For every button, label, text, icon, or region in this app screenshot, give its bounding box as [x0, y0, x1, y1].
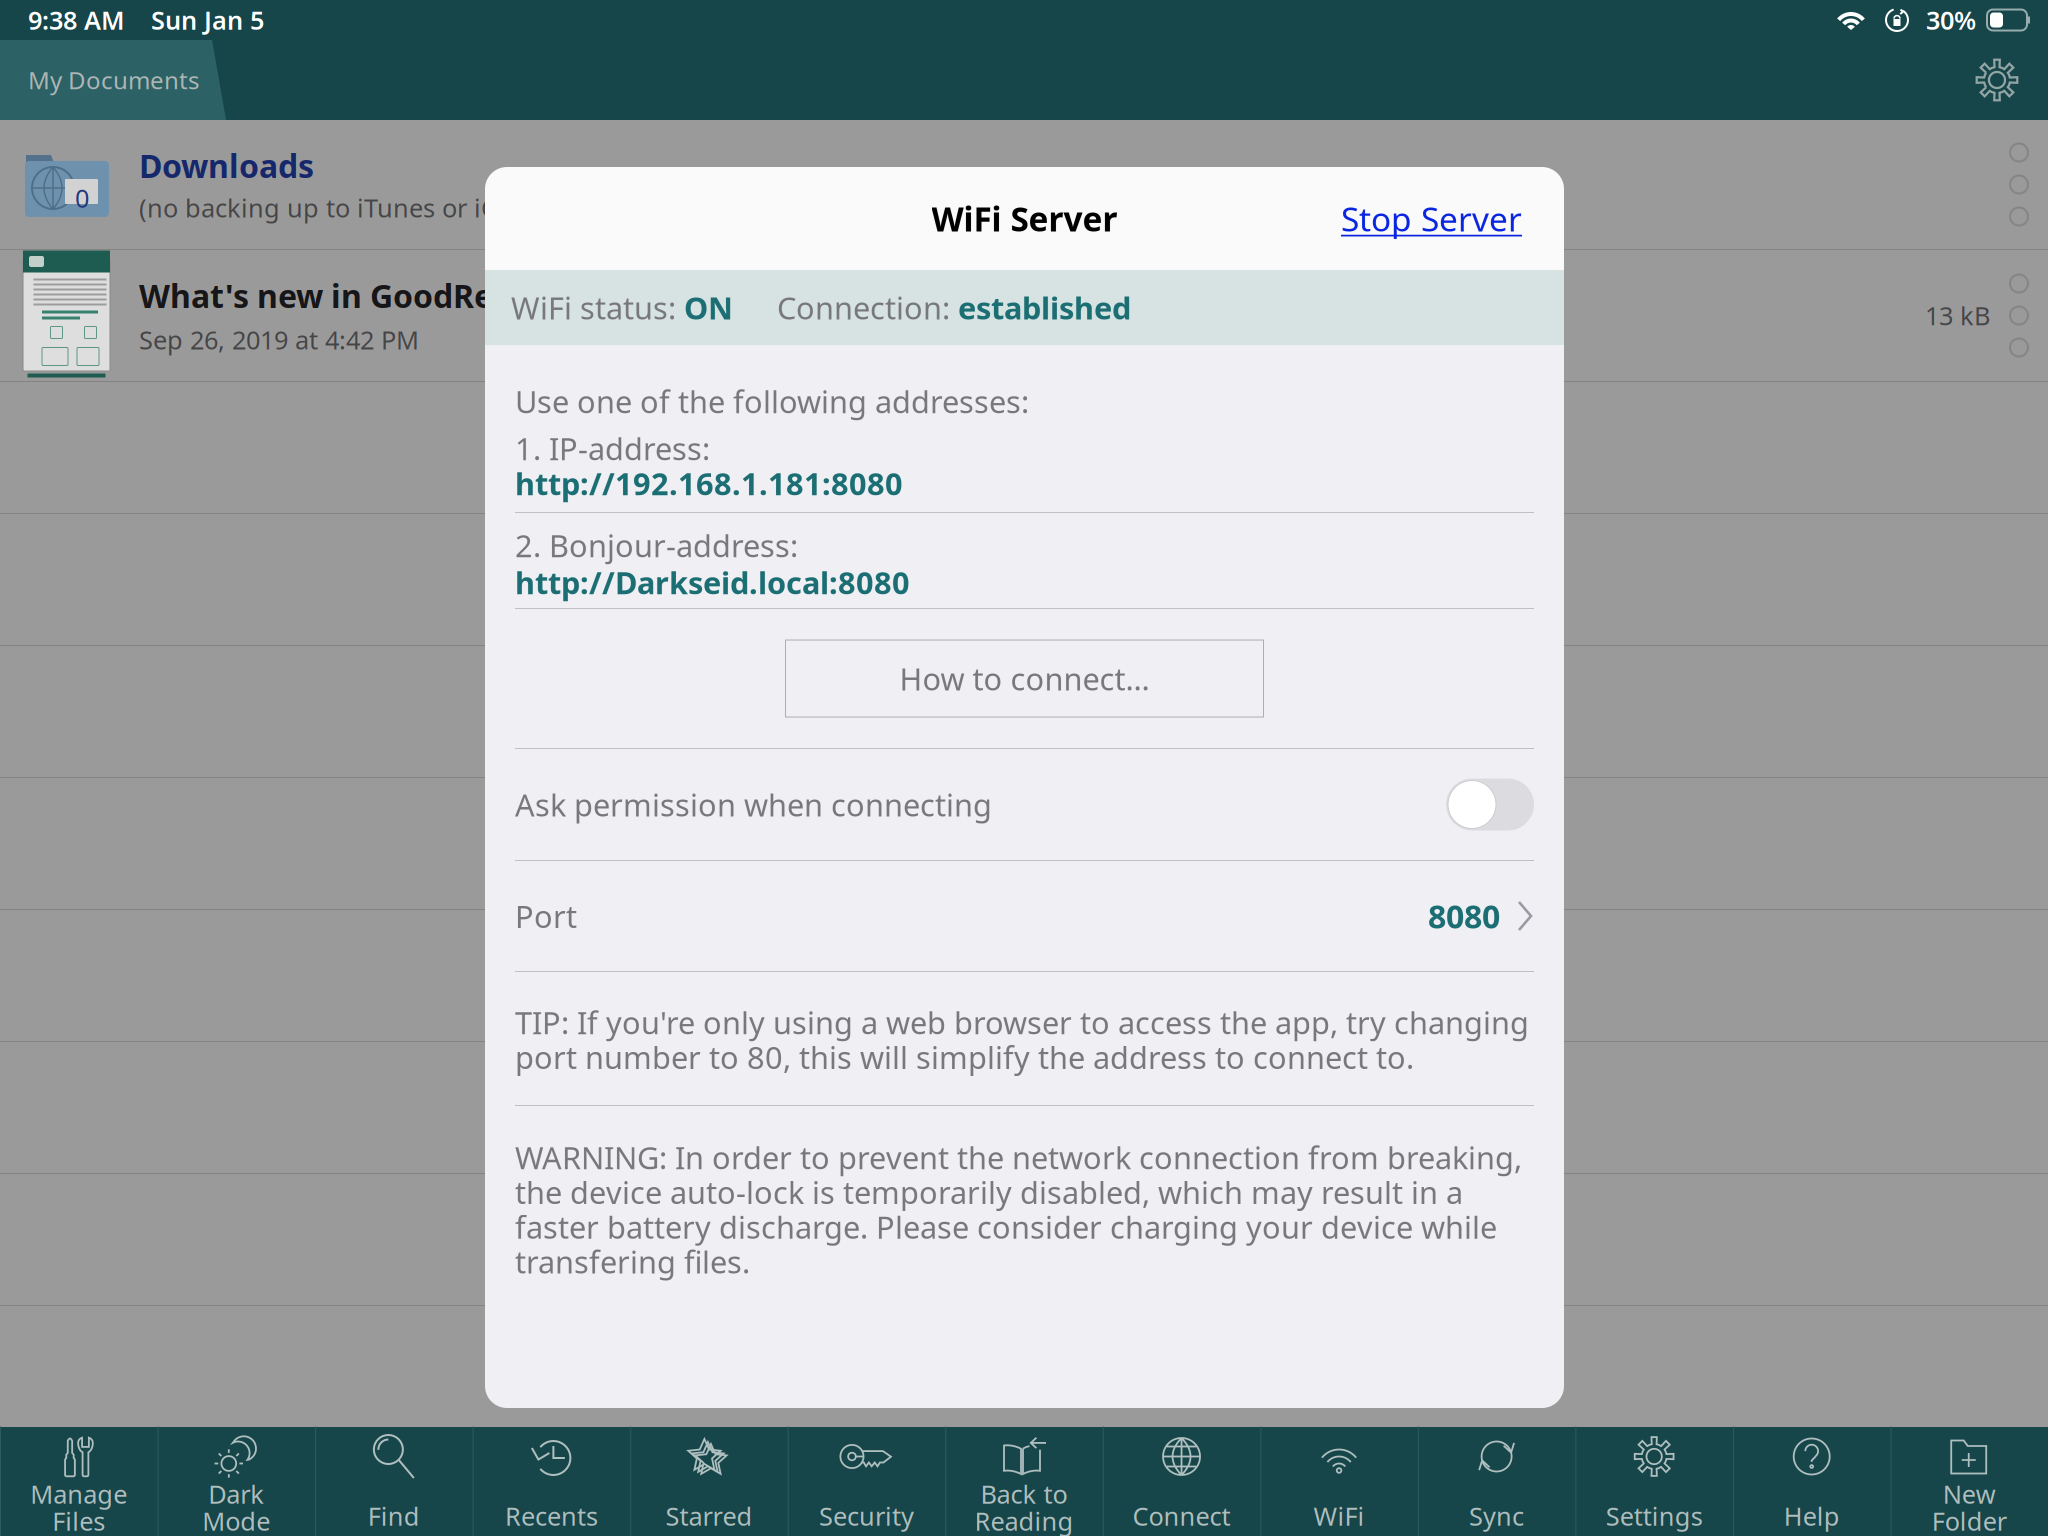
- staticText: Help: [1784, 1499, 1840, 1533]
- staticText: 30%: [1926, 3, 1976, 37]
- staticText: 0: [75, 181, 89, 215]
- staticText: Back to: [980, 1477, 1067, 1511]
- staticText: (no backing up to iTunes or iCloud): [139, 191, 559, 224]
- staticText: Recents: [505, 1499, 598, 1533]
- button[interactable]: 0: [0, 120, 2048, 249]
- button[interactable]: Recents: [473, 1426, 630, 1536]
- staticText: ON: [684, 287, 733, 328]
- button[interactable]: New: [1890, 1426, 2048, 1536]
- button[interactable]: Help: [1733, 1426, 1890, 1536]
- staticText: Use one of the following addresses:: [515, 381, 1029, 422]
- staticText: WiFi status:: [511, 287, 684, 328]
- staticText: WiFi: [1314, 1499, 1365, 1533]
- staticText: Ask permission when connecting: [515, 784, 992, 825]
- staticText: Sun Jan 5: [151, 3, 264, 37]
- staticText: Security: [819, 1499, 914, 1533]
- staticText: Manage: [30, 1477, 127, 1511]
- staticText: WARNING: In order to prevent the network…: [515, 1137, 1522, 1282]
- staticText: Sep 26, 2019 at 4:42 PM: [139, 323, 419, 356]
- staticText: Reading: [974, 1504, 1073, 1536]
- staticText: Port: [515, 896, 577, 936]
- button[interactable]: WiFi: [1260, 1426, 1418, 1536]
- button[interactable]: How to connect...: [785, 640, 1263, 717]
- staticText: How to connect...: [899, 658, 1149, 699]
- staticText: Files: [52, 1504, 105, 1536]
- button[interactable]: Ask permission when connecting: [515, 749, 1534, 860]
- button[interactable]: Port: [515, 861, 1534, 971]
- staticText: Mode: [202, 1504, 270, 1536]
- button[interactable]: What's new in GoodReader 5: [0, 250, 2048, 381]
- staticText: Find: [368, 1499, 420, 1533]
- staticText: 9:38 AM: [28, 3, 125, 37]
- staticText: Connection:: [777, 287, 958, 328]
- button[interactable]: Ask permission when connecting: [1446, 778, 1534, 830]
- staticText: Downloads: [139, 144, 314, 187]
- button[interactable]: Sync: [1418, 1426, 1575, 1536]
- staticText: My Documents: [28, 64, 199, 96]
- button[interactable]: Manage: [0, 1426, 157, 1536]
- staticText: http://Darkseid.local:8080: [515, 562, 910, 603]
- staticText: TIP: If you're only using a web browser …: [515, 1002, 1529, 1077]
- button[interactable]: Dark: [157, 1426, 315, 1536]
- staticText: Starred: [665, 1499, 752, 1533]
- staticText: WiFi Server: [931, 196, 1117, 241]
- staticText: 13 kB: [1925, 299, 1990, 332]
- button[interactable]: Find: [315, 1426, 473, 1536]
- button[interactable]: Stop Server: [1341, 196, 1564, 241]
- staticText: Dark: [208, 1477, 264, 1511]
- button[interactable]: Security: [788, 1426, 945, 1536]
- button[interactable]: Settings: [1575, 1426, 1733, 1536]
- staticText: Sync: [1469, 1499, 1524, 1533]
- staticText: New: [1943, 1477, 1996, 1511]
- staticText: Folder: [1932, 1504, 2007, 1536]
- staticText: Connect: [1132, 1499, 1230, 1533]
- staticText: 1. IP-address:: [515, 428, 710, 469]
- button[interactable]: Settings: [1974, 57, 2048, 103]
- button[interactable]: My Documents: [0, 40, 226, 120]
- staticText: Stop Server: [1341, 196, 1522, 241]
- staticText: http://192.168.1.181:8080: [515, 463, 903, 504]
- staticText: What's new in GoodReader 5: [139, 274, 591, 317]
- button[interactable]: Connect: [1103, 1426, 1260, 1536]
- staticText: established: [958, 287, 1131, 328]
- staticText: 8080: [1428, 895, 1500, 937]
- staticText: Settings: [1606, 1499, 1703, 1533]
- staticText: 2. Bonjour-address:: [515, 525, 798, 566]
- button[interactable]: Starred: [630, 1426, 788, 1536]
- button[interactable]: Back to: [945, 1426, 1103, 1536]
